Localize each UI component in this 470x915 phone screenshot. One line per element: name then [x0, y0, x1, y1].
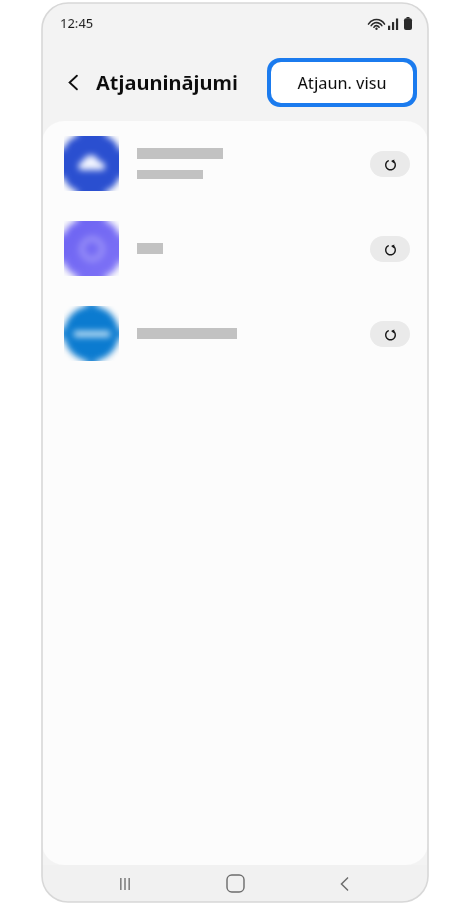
- button[interactable]: Atjaun. visu: [271, 62, 413, 103]
- button[interactable]: Refresh: [42, 291, 428, 376]
- staticText: Atjauninājumi: [96, 69, 238, 96]
- staticText: Atjaun. visu: [297, 72, 387, 94]
- button[interactable]: Refresh: [42, 206, 428, 291]
- button[interactable]: Home: [208, 865, 262, 902]
- button[interactable]: Refresh: [42, 121, 428, 206]
- button[interactable]: Back: [318, 865, 372, 902]
- staticText: 12:45: [60, 14, 94, 32]
- button[interactable]: Recent apps: [98, 865, 152, 902]
- button[interactable]: Refresh: [370, 236, 410, 262]
- button[interactable]: Refresh: [370, 151, 410, 177]
- button[interactable]: Refresh: [370, 321, 410, 347]
- button[interactable]: Back: [52, 61, 94, 103]
